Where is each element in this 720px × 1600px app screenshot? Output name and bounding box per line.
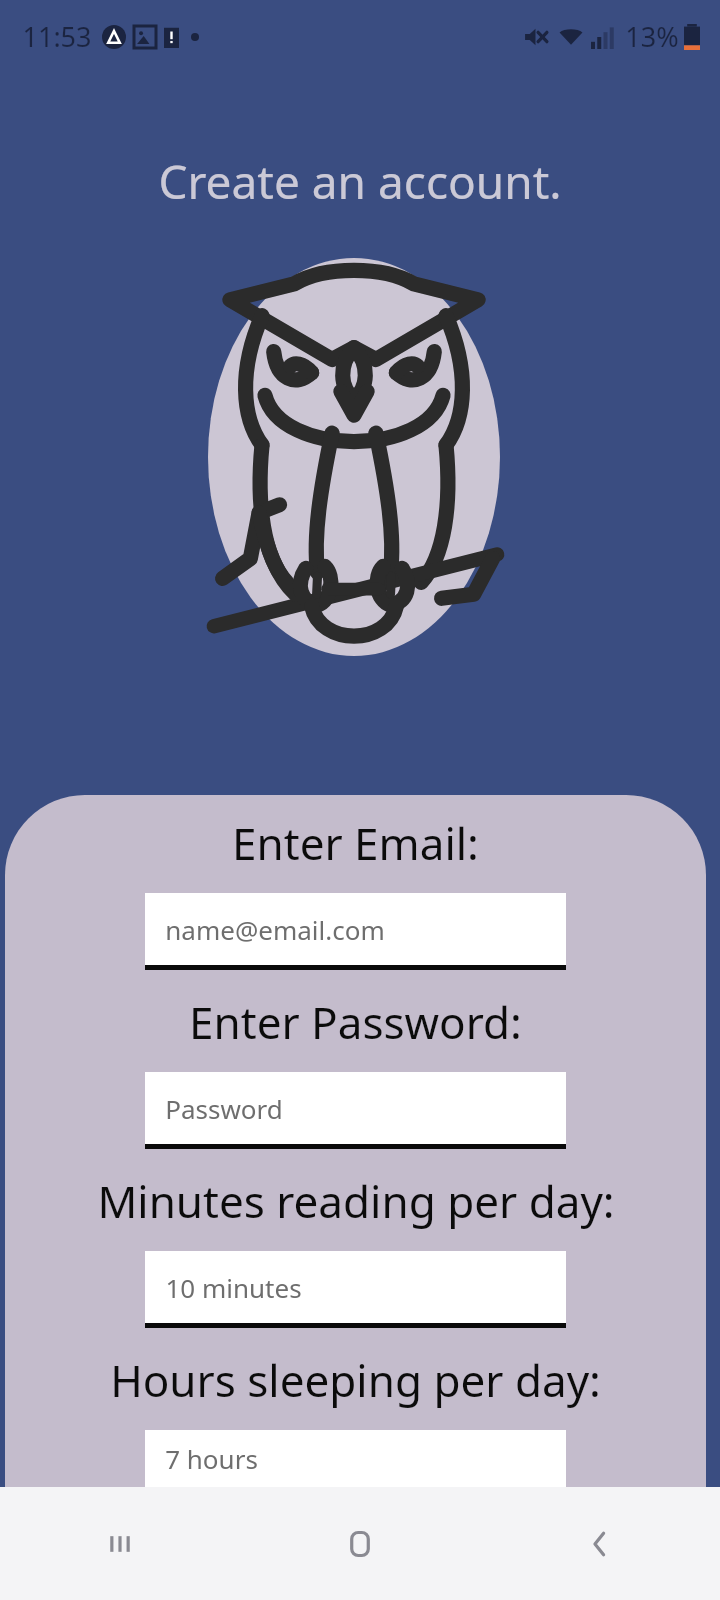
staticText: name@email.com [165,912,385,947]
button[interactable]: 10 minutes [145,1251,566,1328]
staticText: Enter Password: [189,992,522,1052]
staticText: Enter Email: [232,813,479,873]
staticText: Minutes reading per day: [97,1171,615,1231]
staticText: 11:53 [22,18,92,55]
button[interactable]: Back [480,1487,720,1600]
button[interactable]: Password [145,1072,566,1149]
button[interactable]: 7 hours [145,1430,566,1487]
staticText: Password [165,1091,283,1126]
button[interactable]: Home [240,1487,480,1600]
button[interactable]: name@email.com [145,893,566,970]
button[interactable]: Recent apps [0,1487,240,1600]
staticText: 13% [625,18,679,55]
staticText: 7 hours [165,1441,258,1476]
staticText: 10 minutes [165,1270,302,1305]
staticText: Create an account. [158,150,562,210]
staticText: Hours sleeping per day: [110,1350,601,1410]
